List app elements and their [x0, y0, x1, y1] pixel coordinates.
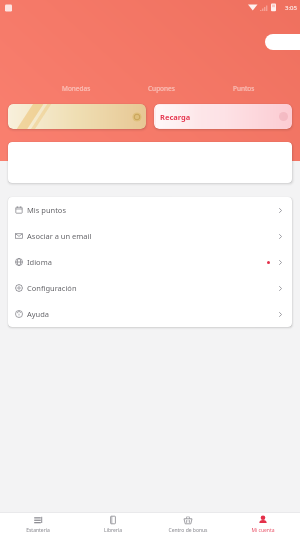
button[interactable]: Librería — [75, 513, 150, 536]
staticText: Recarga — [160, 112, 191, 122]
button[interactable]: Centro de bonus — [150, 513, 225, 536]
staticText: Monedas — [62, 84, 91, 93]
button[interactable]: Tarjeta — [8, 142, 292, 183]
staticText: Cupones — [148, 84, 175, 93]
button[interactable]: Cupones — [144, 83, 179, 94]
staticText: Mi cuenta — [251, 527, 275, 534]
staticText: Ayuda — [27, 309, 50, 319]
button[interactable]: Idioma — [8, 249, 292, 275]
button[interactable]: Puntos — [229, 83, 259, 94]
button[interactable]: Asociar a un email — [8, 223, 292, 249]
button[interactable]: Ayuda — [8, 301, 292, 327]
staticText: Idioma — [27, 257, 52, 267]
staticText: Librería — [104, 527, 122, 534]
staticText: Mis puntos — [27, 205, 66, 215]
button[interactable]: Configuración — [8, 275, 292, 301]
staticText: Centro de bonus — [168, 527, 208, 534]
staticText: Estantería — [26, 527, 50, 534]
button[interactable]: Monedas — [8, 104, 146, 129]
staticText: 3:05 — [285, 4, 297, 12]
button[interactable]: Estantería — [0, 513, 75, 536]
button[interactable]: Mi cuenta — [225, 513, 300, 536]
button[interactable]: Buscar — [265, 34, 300, 50]
staticText: Puntos — [233, 84, 255, 93]
button[interactable]: Monedas — [58, 83, 95, 94]
button[interactable]: Recarga — [154, 104, 292, 129]
staticText: Asociar a un email — [27, 231, 92, 241]
staticText: Configuración — [27, 283, 77, 293]
button[interactable]: Mis puntos — [8, 197, 292, 223]
